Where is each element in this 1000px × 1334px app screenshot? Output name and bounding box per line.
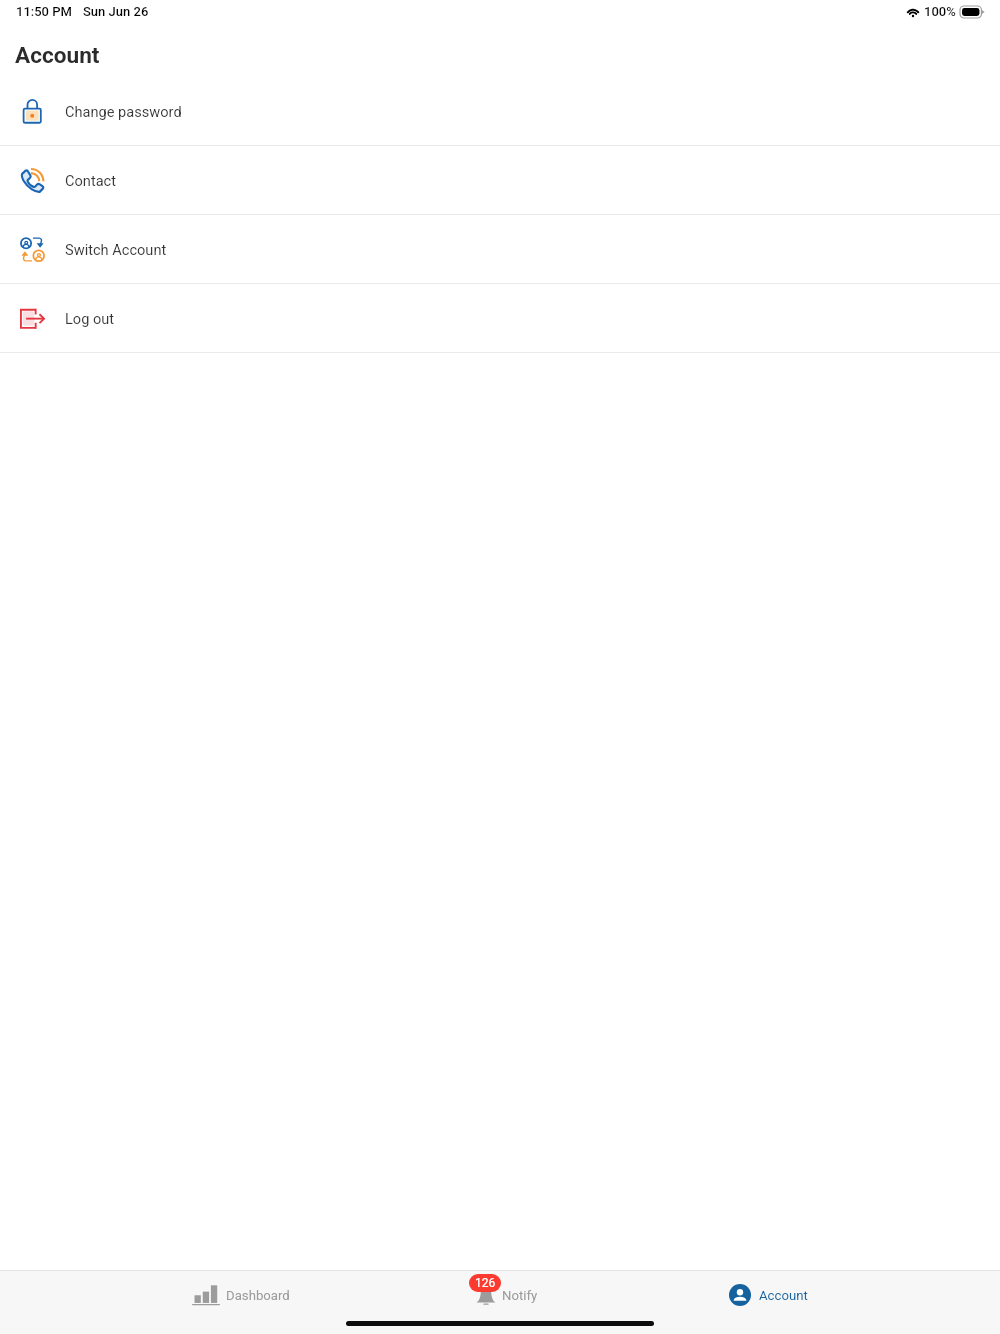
staticText: Sun Jun 26 [83,4,149,19]
staticText: Account [759,1288,808,1303]
button[interactable]: 126 [476,1271,538,1319]
button[interactable]: Dashboard [192,1271,290,1319]
button[interactable]: Account [729,1271,808,1319]
button[interactable]: Log out [0,284,1000,352]
staticText: Log out [65,310,115,327]
staticText: Dashboard [226,1288,290,1303]
button[interactable]: Contact [0,146,1000,214]
button[interactable]: Switch Account [0,215,1000,283]
staticText: Account [15,42,100,68]
staticText: 126 [475,1276,496,1290]
staticText: Notify [502,1288,538,1303]
other: Wi-Fi connected [906,6,920,17]
other: Battery full [960,6,984,18]
staticText: 11:50 PM [16,4,72,19]
staticText: Change password [65,103,182,120]
staticText: Contact [65,172,117,189]
staticText: Switch Account [65,241,167,258]
button[interactable]: Change password [0,77,1000,145]
staticText: 100% [924,4,956,19]
